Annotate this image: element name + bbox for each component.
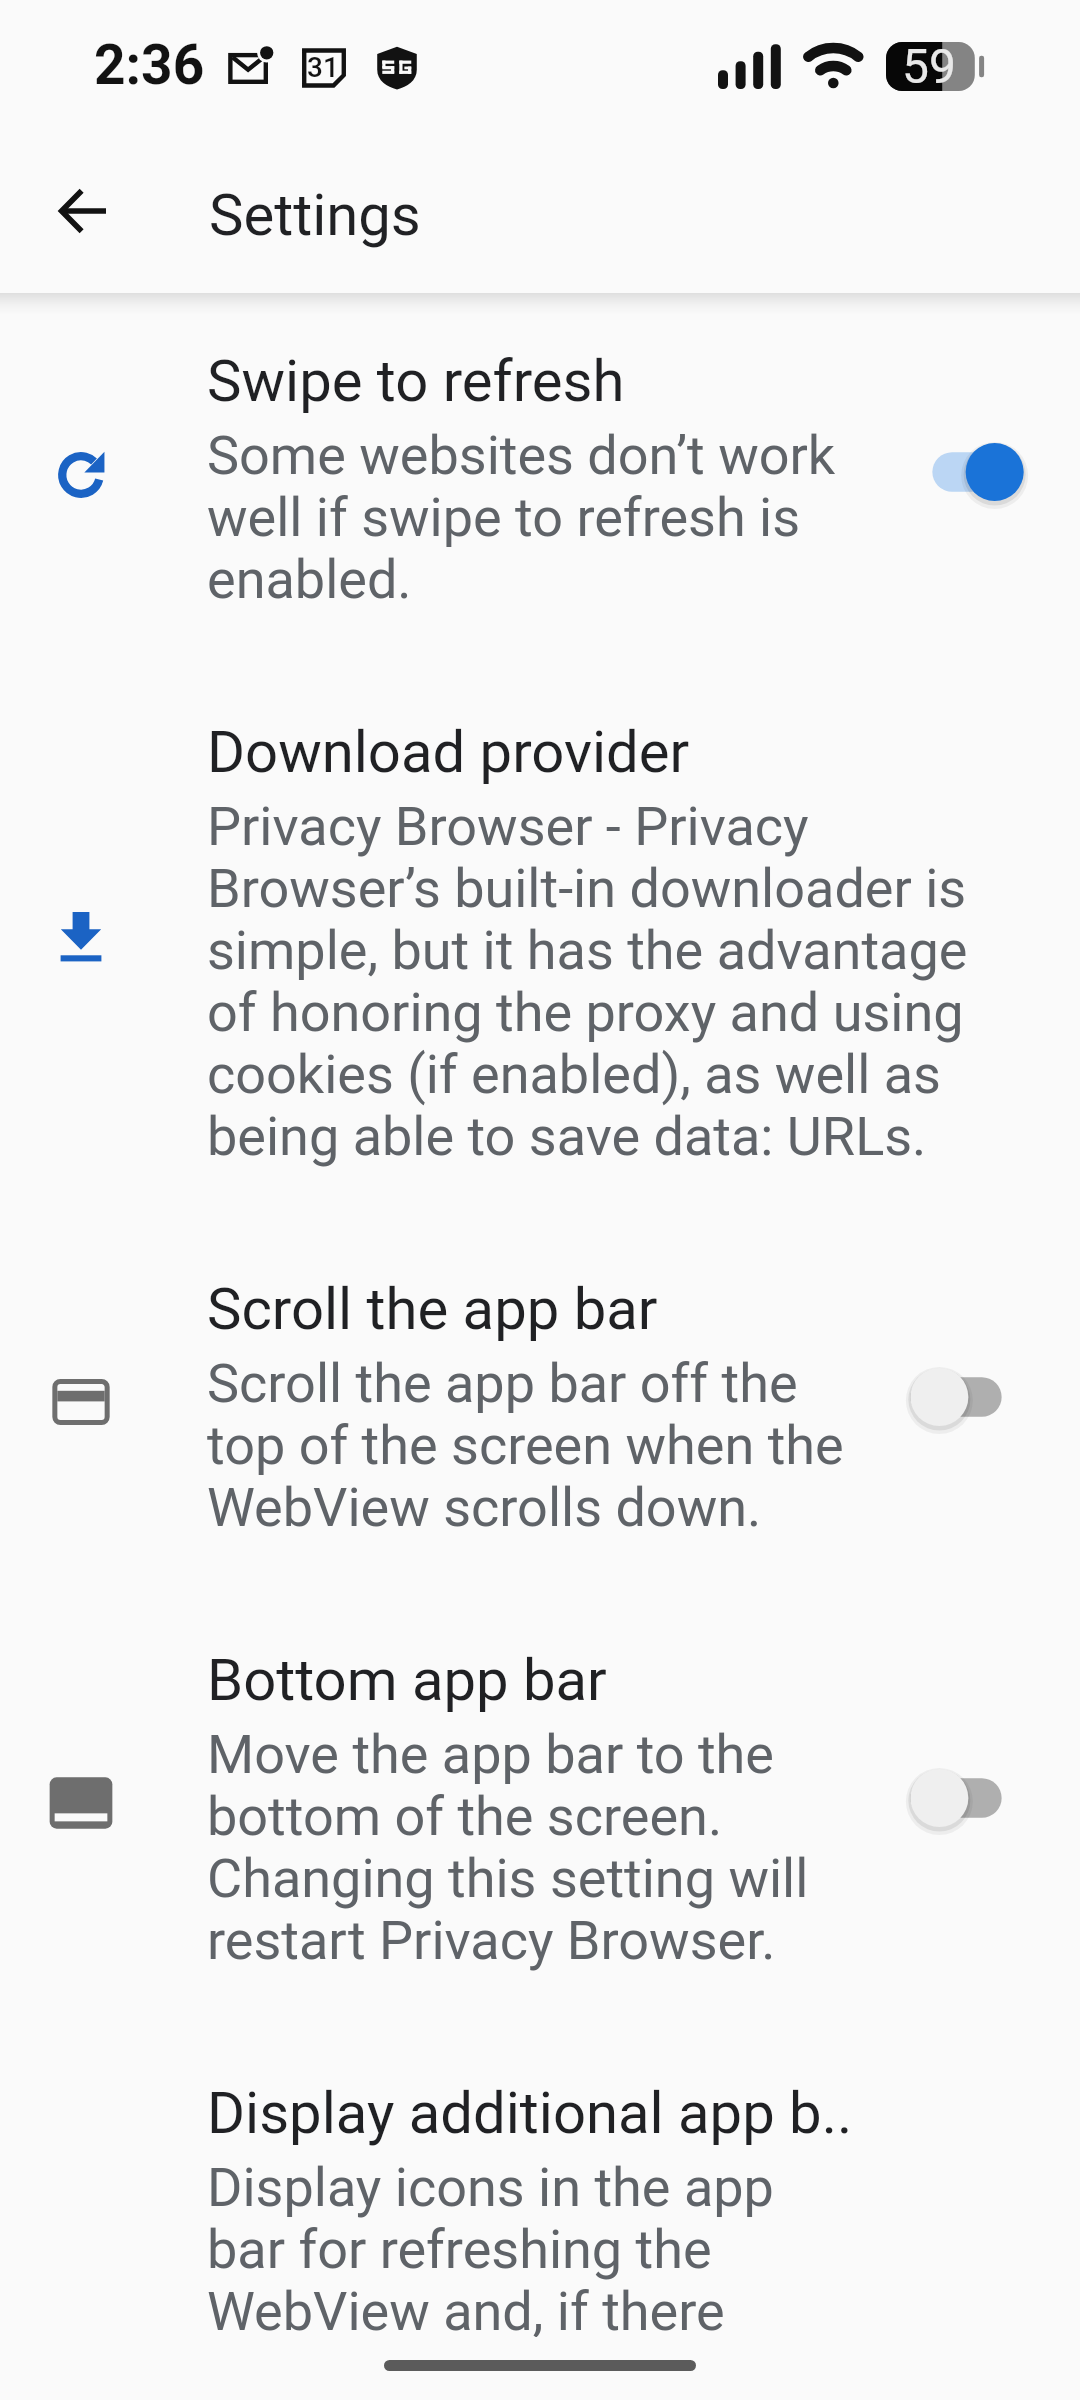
- staticText: 59: [902, 38, 956, 87]
- other: Home: [384, 2360, 696, 2371]
- staticText: Scroll the app bar off the top of the sc…: [207, 1353, 852, 1539]
- staticText: 31: [307, 51, 339, 84]
- staticText: Scroll the app bar: [207, 1275, 852, 1343]
- staticText: 2:36: [94, 33, 205, 97]
- staticText: Some websites don’t work well if swipe t…: [207, 425, 852, 611]
- staticText: Download provider: [207, 718, 907, 786]
- staticText: Settings: [209, 181, 421, 249]
- button[interactable]: On: [923, 422, 1033, 522]
- staticText: Display icons in the app bar for refresh…: [207, 2157, 852, 2337]
- staticText: Swipe to refresh: [207, 347, 852, 415]
- button[interactable]: Swipe to refresh: [0, 303, 1080, 674]
- staticText: Bottom app bar: [207, 1646, 852, 1714]
- button[interactable]: Off: [901, 1347, 1011, 1447]
- button[interactable]: Bottom app bar: [0, 1602, 1080, 2035]
- staticText: Privacy Browser - Privacy Browser’s buil…: [207, 796, 997, 1168]
- button[interactable]: Off: [901, 1748, 1011, 1848]
- button[interactable]: Navigate up: [11, 139, 155, 283]
- button[interactable]: Display additional app b..: [0, 2035, 1080, 2400]
- button[interactable]: Scroll the app bar: [0, 1231, 1080, 1602]
- staticText: Move the app bar to the bottom of the sc…: [207, 1724, 852, 1972]
- button[interactable]: Download provider: [0, 674, 1080, 1231]
- staticText: Display additional app b..: [207, 2079, 852, 2147]
